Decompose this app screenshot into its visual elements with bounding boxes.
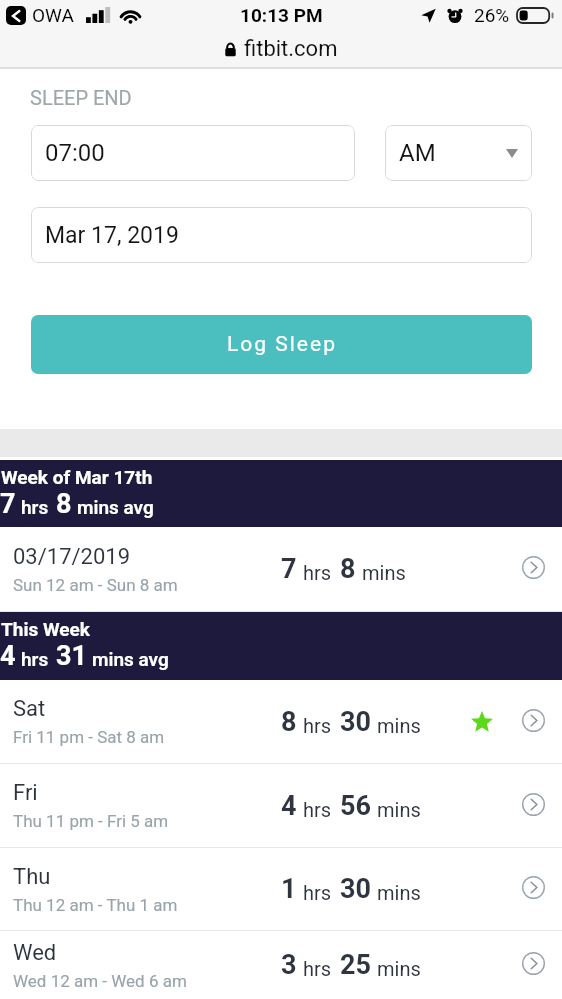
staticText: 7 <box>0 488 16 520</box>
button[interactable]: Show details <box>516 870 550 904</box>
staticText: Wed 12 am - Wed 6 am <box>13 971 187 991</box>
staticText: 8 <box>340 553 356 585</box>
staticText: 3 <box>281 949 297 981</box>
staticText: fitbit.com <box>244 36 338 62</box>
staticText: Thu 12 am - Thu 1 am <box>13 895 178 915</box>
staticText: 1 <box>281 873 297 905</box>
staticText: mins <box>377 957 421 980</box>
staticText: 4 <box>0 640 16 672</box>
button[interactable]: AM <box>385 125 532 181</box>
button[interactable]: Log Sleep <box>31 315 532 374</box>
staticText: mins <box>377 714 421 737</box>
button[interactable]: 03/17/2019 <box>0 527 562 611</box>
staticText: Wed <box>13 940 57 966</box>
button[interactable]: Show details <box>516 703 550 737</box>
staticText: Sat <box>13 696 46 722</box>
staticText: hrs <box>21 648 49 670</box>
staticText: mins avg <box>77 496 154 518</box>
staticText: hrs <box>303 881 332 904</box>
staticText: hrs <box>303 561 332 584</box>
button[interactable]: Show details <box>516 946 550 980</box>
staticText: Week of Mar 17th <box>1 466 153 488</box>
staticText: Thu <box>13 864 51 890</box>
button[interactable]: Back to OWA <box>6 6 26 25</box>
staticText: mins avg <box>92 648 169 670</box>
staticText: mins <box>377 881 421 904</box>
staticText: 03/17/2019 <box>13 544 131 570</box>
button[interactable]: Wed <box>0 931 562 999</box>
staticText: Log Sleep <box>227 332 337 357</box>
staticText: 7 <box>281 553 297 585</box>
staticText: hrs <box>21 496 49 518</box>
staticText: 4 <box>281 790 297 822</box>
staticText: hrs <box>303 714 332 737</box>
button[interactable]: Fri <box>0 764 562 847</box>
button[interactable]: Show details <box>516 787 550 821</box>
staticText: 07:00 <box>45 139 105 167</box>
staticText: 25 <box>340 949 371 981</box>
button[interactable]: Mar 17, 2019 <box>31 207 532 263</box>
button[interactable]: 07:00 <box>31 125 355 181</box>
staticText: 56 <box>340 790 371 822</box>
staticText: mins <box>362 561 406 584</box>
staticText: Fri <box>13 780 38 806</box>
staticText: 8 <box>56 488 72 520</box>
staticText: 10:13 PM <box>240 4 323 26</box>
staticText: hrs <box>303 957 332 980</box>
staticText: mins <box>377 798 421 821</box>
staticText: Thu 11 pm - Fri 5 am <box>13 811 169 831</box>
staticText: SLEEP END <box>30 86 132 109</box>
button[interactable]: Thu <box>0 848 562 930</box>
staticText: Fri 11 pm - Sat 8 am <box>13 727 165 747</box>
staticText: hrs <box>303 798 332 821</box>
staticText: OWA <box>32 4 74 26</box>
staticText: 26% <box>474 4 510 26</box>
staticText: AM <box>399 139 436 167</box>
staticText: 30 <box>340 706 371 738</box>
staticText: Sun 12 am - Sun 8 am <box>13 575 178 595</box>
button[interactable]: Show details <box>516 550 550 584</box>
staticText: This Week <box>1 618 90 640</box>
button[interactable]: Sat <box>0 680 562 763</box>
staticText: 8 <box>281 706 297 738</box>
staticText: 31 <box>56 640 87 672</box>
staticText: 30 <box>340 873 371 905</box>
staticText: Mar 17, 2019 <box>45 222 179 249</box>
